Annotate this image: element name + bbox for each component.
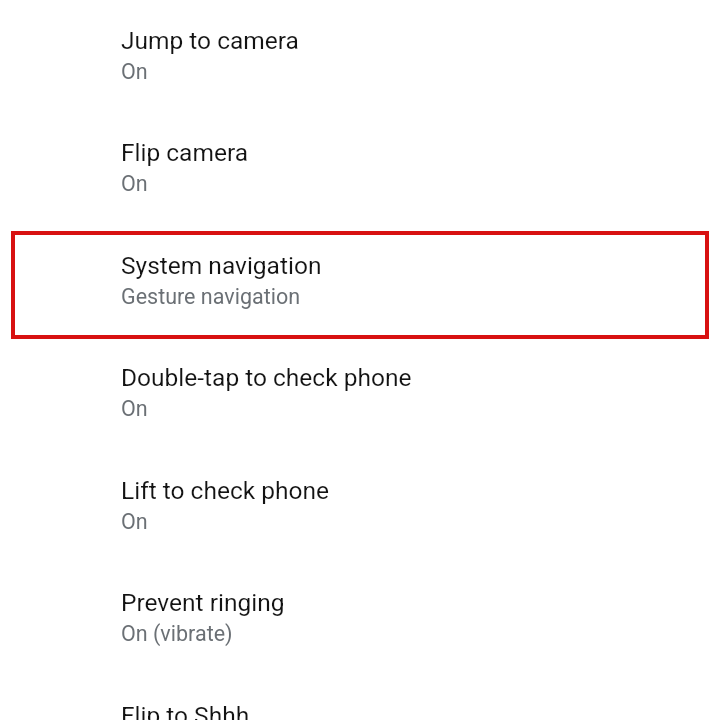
button[interactable]: Double-tap to check phone: [0, 363, 720, 476]
button[interactable]: Prevent ringing: [0, 588, 720, 701]
button[interactable]: Lift to check phone: [0, 476, 720, 589]
staticText: Double-tap to check phone: [121, 363, 412, 392]
staticText: On: [121, 171, 148, 196]
staticText: System navigation: [121, 251, 322, 280]
staticText: On: [121, 396, 148, 421]
button[interactable]: Flip to Shhh: [0, 701, 720, 720]
button[interactable]: System navigation: [0, 251, 720, 364]
staticText: Jump to camera: [121, 26, 299, 55]
button[interactable]: Flip camera: [0, 138, 720, 251]
staticText: On: [121, 509, 148, 534]
staticText: Gesture navigation: [121, 284, 301, 309]
staticText: On (vibrate): [121, 621, 233, 646]
staticText: Flip camera: [121, 138, 249, 167]
staticText: Lift to check phone: [121, 476, 329, 505]
button[interactable]: Jump to camera: [0, 26, 720, 139]
staticText: On: [121, 59, 148, 84]
staticText: Prevent ringing: [121, 588, 285, 617]
staticText: Flip to Shhh: [121, 701, 250, 720]
